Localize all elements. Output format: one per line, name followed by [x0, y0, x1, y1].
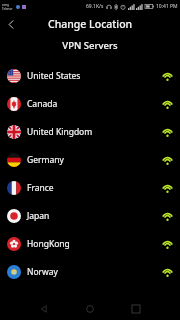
staticText: VPN Servers — [62, 39, 118, 52]
staticText: HongKong — [27, 238, 70, 250]
staticText: 69.1K/s — [86, 3, 104, 10]
button[interactable]: Norway — [0, 258, 180, 286]
button[interactable]: France — [0, 174, 180, 202]
staticText: France — [27, 182, 54, 194]
button[interactable]: Japan — [0, 202, 180, 230]
button[interactable]: United Kingdom — [0, 118, 180, 146]
staticText: Japan — [27, 210, 50, 222]
staticText: United Kingdom — [27, 126, 93, 138]
staticText: Norway — [27, 266, 58, 278]
button[interactable]: United States — [0, 62, 180, 90]
button[interactable]: Recents — [121, 298, 151, 320]
button[interactable]: Germany — [0, 146, 180, 174]
button[interactable]: Canada — [0, 90, 180, 118]
button[interactable]: Home — [75, 298, 105, 320]
staticText: 10:41 PM — [156, 3, 178, 10]
staticText: Canada — [27, 98, 58, 110]
button[interactable]: Back — [0, 13, 22, 35]
staticText: zong — [2, 3, 9, 7]
button[interactable]: HongKong — [0, 230, 180, 258]
staticText: Germany — [27, 154, 64, 166]
staticText: United States — [27, 70, 81, 82]
staticText: Telenor — [2, 7, 13, 11]
button[interactable]: Back — [29, 298, 59, 320]
staticText: Change Location — [48, 17, 133, 31]
